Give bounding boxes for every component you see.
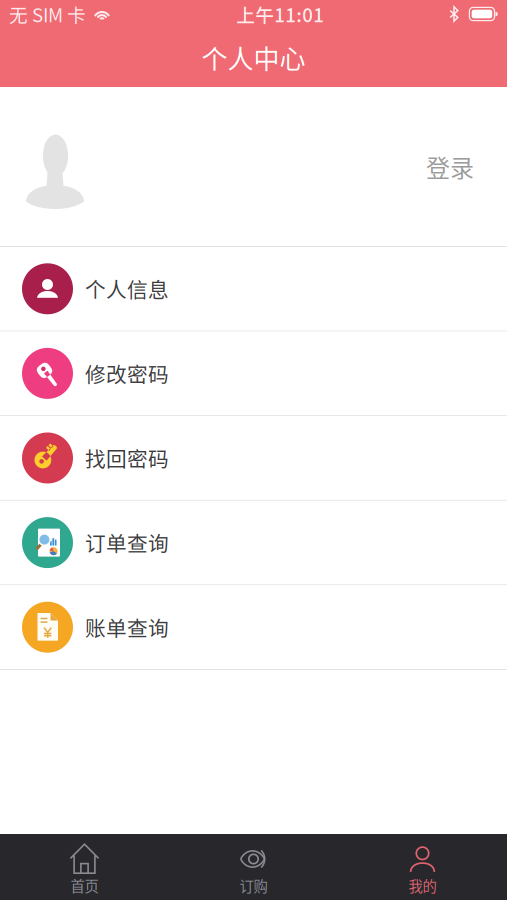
staticText: 个人中心: [201, 39, 305, 76]
staticText: 订购: [239, 875, 267, 896]
button[interactable]: 我的: [338, 834, 507, 900]
staticText: 账单查询: [85, 612, 169, 642]
button[interactable]: 个人中心: [0, 28, 507, 87]
button[interactable]: 账单查询: [0, 585, 507, 669]
staticText: 修改密码: [85, 358, 169, 388]
button[interactable]: 找回密码: [0, 416, 507, 500]
staticText: 上午11:01: [236, 0, 324, 27]
staticText: 登录: [426, 149, 474, 184]
staticText: 找回密码: [85, 443, 169, 473]
staticText: 订单查询: [85, 528, 169, 557]
button[interactable]: 修改密码: [0, 332, 507, 415]
button[interactable]: 订购: [169, 834, 338, 900]
staticText: 个人信息: [85, 274, 169, 304]
staticText: 首页: [70, 875, 98, 896]
button[interactable]: 登录: [0, 87, 507, 246]
button[interactable]: 首页: [0, 834, 169, 900]
staticText: 无 SIM 卡: [9, 0, 86, 27]
staticText: 我的: [408, 875, 436, 896]
button[interactable]: 个人信息: [0, 247, 507, 331]
button[interactable]: 订单查询: [0, 501, 507, 584]
